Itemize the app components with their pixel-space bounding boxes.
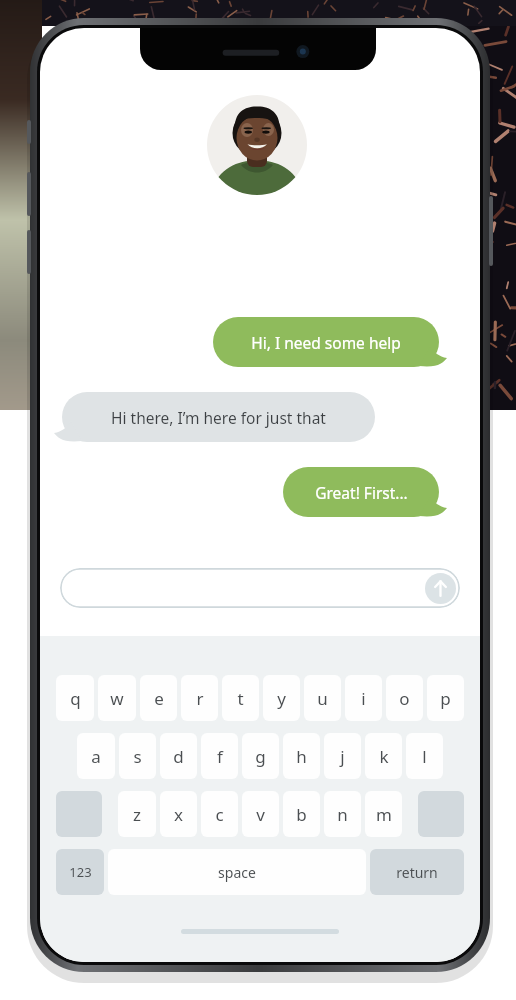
button[interactable]: y	[263, 675, 300, 721]
button[interactable]: k	[365, 733, 402, 779]
button[interactable]: g	[242, 733, 279, 779]
button[interactable]: space	[108, 849, 366, 895]
button[interactable]: Send	[425, 573, 456, 604]
button[interactable]: 123	[56, 849, 104, 895]
button[interactable]: n	[324, 791, 361, 837]
staticText: Hi there, I’m here for just that	[111, 407, 326, 428]
staticText: q	[70, 687, 81, 710]
button[interactable]: w	[98, 675, 136, 721]
staticText: o	[399, 687, 410, 710]
button[interactable]: h	[283, 733, 320, 779]
staticText: e	[154, 687, 164, 710]
staticText: b	[296, 803, 307, 826]
button[interactable]: Profile photo	[207, 95, 307, 195]
button[interactable]: e	[140, 675, 177, 721]
staticText: g	[255, 745, 266, 768]
button[interactable]: c	[201, 791, 238, 837]
button[interactable]: l	[406, 733, 443, 779]
button[interactable]: f	[201, 733, 238, 779]
staticText: t	[237, 687, 244, 710]
button[interactable]: q	[56, 675, 94, 721]
button[interactable]: v	[242, 791, 279, 837]
staticText: h	[296, 745, 307, 768]
button[interactable]: s	[119, 733, 156, 779]
staticText: Great! First...	[315, 482, 408, 503]
staticText: space	[218, 863, 256, 882]
staticText: j	[340, 745, 345, 768]
staticText: c	[215, 803, 224, 826]
button[interactable]: return	[370, 849, 464, 895]
staticText: l	[422, 745, 427, 768]
button[interactable]: Great! First...	[283, 467, 439, 517]
button[interactable]: Backspace	[418, 791, 464, 837]
staticText: d	[173, 745, 184, 768]
staticText: z	[133, 803, 141, 826]
staticText: r	[196, 687, 204, 710]
button[interactable]: i	[345, 675, 382, 721]
staticText: m	[376, 803, 392, 826]
button[interactable]: t	[222, 675, 259, 721]
button[interactable]: o	[386, 675, 423, 721]
staticText: s	[133, 745, 142, 768]
staticText: i	[361, 687, 366, 710]
button[interactable]: a	[77, 733, 115, 779]
button[interactable]: x	[160, 791, 197, 837]
staticText: u	[317, 687, 328, 710]
staticText: v	[256, 803, 265, 826]
staticText: w	[110, 687, 124, 710]
button[interactable]: Hi there, I’m here for just that	[62, 392, 375, 442]
staticText: return	[396, 863, 438, 882]
button[interactable]: m	[365, 791, 402, 837]
staticText: n	[337, 803, 348, 826]
staticText: x	[174, 803, 183, 826]
button[interactable]: b	[283, 791, 320, 837]
staticText: y	[277, 687, 286, 710]
staticText: 123	[69, 863, 92, 881]
button[interactable]: Hi, I need some help	[213, 317, 439, 367]
staticText: a	[91, 745, 101, 768]
button[interactable]: p	[427, 675, 464, 721]
button[interactable]: Shift	[56, 791, 102, 837]
button[interactable]	[60, 568, 460, 608]
button[interactable]: z	[118, 791, 156, 837]
button[interactable]: r	[181, 675, 218, 721]
button[interactable]: u	[304, 675, 341, 721]
button[interactable]: d	[160, 733, 197, 779]
staticText: Hi, I need some help	[251, 332, 401, 353]
staticText: k	[379, 745, 389, 768]
staticText: f	[217, 745, 223, 768]
button[interactable]: j	[324, 733, 361, 779]
staticText: p	[440, 687, 451, 710]
